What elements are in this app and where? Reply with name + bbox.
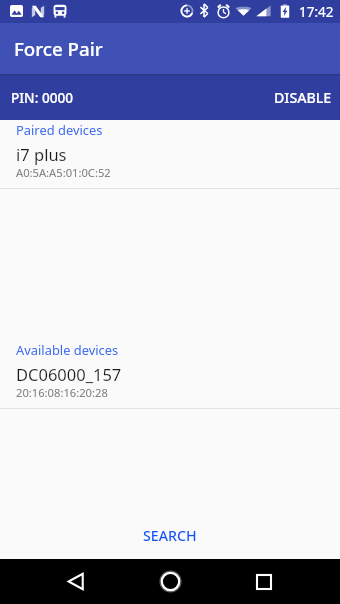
button[interactable]: Home: [146, 559, 194, 604]
staticText: Available devices: [16, 341, 119, 359]
staticText: i7 plus: [16, 143, 67, 165]
staticText: A0:5A:A5:01:0C:52: [16, 165, 111, 180]
staticText: 20:16:08:16:20:28: [16, 385, 108, 400]
staticText: 17:42: [299, 3, 334, 21]
button[interactable]: Back: [52, 559, 100, 604]
staticText: Force Pair: [14, 36, 103, 61]
staticText: Paired devices: [16, 121, 103, 139]
staticText: DISABLE: [274, 88, 332, 107]
staticText: SEARCH: [143, 526, 197, 545]
staticText: PIN: 0000: [11, 88, 73, 107]
button[interactable]: DC06000_157: [0, 359, 340, 409]
button[interactable]: Recent apps: [240, 559, 288, 604]
staticText: DC06000_157: [16, 363, 122, 385]
button[interactable]: DISABLE: [274, 88, 332, 107]
button[interactable]: i7 plus: [0, 139, 340, 189]
button[interactable]: SEARCH: [0, 513, 340, 557]
